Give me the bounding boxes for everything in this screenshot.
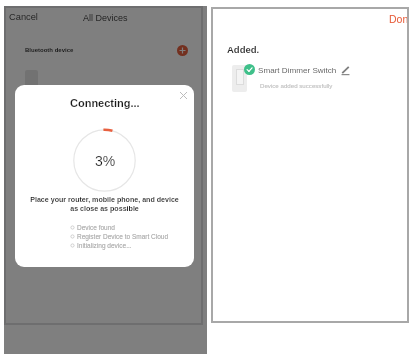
staticText: Added. xyxy=(227,44,260,55)
button[interactable]: Add device xyxy=(177,45,188,56)
staticText: Bluetooth device xyxy=(25,47,74,54)
staticText: Smart Dimmer Switch xyxy=(258,66,337,75)
staticText: Device added successfully xyxy=(260,82,333,89)
button[interactable]: Rename device xyxy=(340,65,350,75)
button[interactable]: Cancel xyxy=(4,8,46,26)
button[interactable]: Done xyxy=(389,10,409,28)
staticText: Initializing device... xyxy=(77,242,132,249)
staticText: Place your router, mobile phone, and dev… xyxy=(15,196,194,213)
staticText: Register Device to Smart Cloud xyxy=(77,233,169,240)
staticText: Connecting... xyxy=(70,97,140,109)
button[interactable]: Close xyxy=(175,87,191,103)
staticText: Done xyxy=(389,13,409,25)
staticText: Device found xyxy=(77,224,115,231)
staticText: Cancel xyxy=(9,12,38,22)
staticText: All Devices xyxy=(83,13,128,23)
staticText: 3% xyxy=(95,153,116,169)
